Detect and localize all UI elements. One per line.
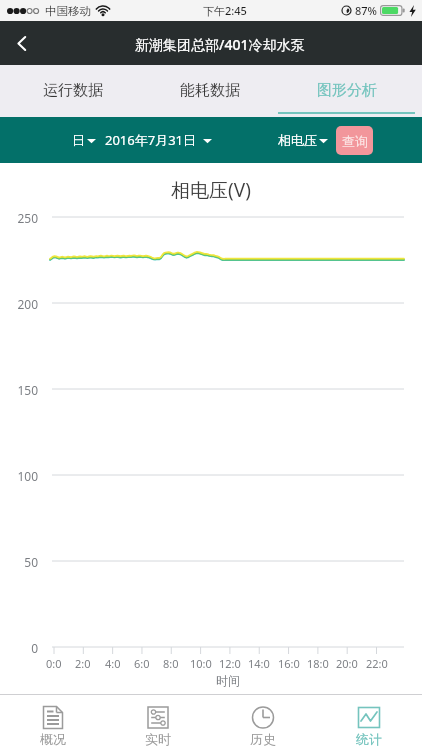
staticText: 14:0 [248, 656, 270, 671]
staticText: 50 [2, 554, 38, 570]
staticText: 22:0 [366, 656, 388, 671]
staticText: 0 [2, 640, 38, 656]
staticText: 相电压(V) [171, 177, 251, 203]
button[interactable]: 统计 [316, 695, 422, 750]
staticText: 0:0 [46, 656, 62, 671]
staticText: 新潮集团总部/401冷却水泵 [135, 35, 305, 54]
staticText: 查询 [342, 133, 368, 149]
button[interactable]: 能耗数据 [141, 65, 278, 117]
staticText: 概况 [40, 731, 66, 747]
button[interactable]: 实时 [105, 695, 210, 750]
button[interactable]: 运行数据 [4, 65, 141, 117]
staticText: 18:0 [307, 656, 329, 671]
button[interactable]: 图形分析 [278, 65, 415, 117]
staticText: 运行数据 [43, 81, 103, 100]
staticText: 下午2:45 [203, 3, 247, 18]
staticText: 16:0 [278, 656, 300, 671]
staticText: 150 [2, 382, 38, 398]
staticText: 中国移动 [45, 4, 91, 18]
button[interactable]: 相电压 [278, 132, 328, 148]
staticText: 日 [72, 132, 85, 148]
staticText: 2016年7月31日 [105, 131, 197, 149]
staticText: 历史 [250, 731, 276, 747]
staticText: 8:0 [163, 656, 179, 671]
staticText: 实时 [145, 731, 171, 747]
staticText: 2:0 [75, 656, 91, 671]
staticText: 时间 [216, 673, 240, 688]
button[interactable]: 查询 [336, 126, 373, 155]
staticText: 4:0 [105, 656, 121, 671]
button[interactable]: 历史 [210, 695, 316, 750]
staticText: 相电压 [278, 132, 317, 148]
staticText: 12:0 [219, 656, 241, 671]
staticText: 100 [2, 468, 38, 484]
staticText: 统计 [356, 731, 382, 747]
button[interactable]: Back [0, 21, 44, 65]
button[interactable]: 日 [72, 132, 96, 148]
staticText: 250 [2, 210, 38, 226]
staticText: 图形分析 [317, 81, 377, 100]
staticText: 200 [2, 296, 38, 312]
staticText: 20:0 [336, 656, 358, 671]
staticText: 10:0 [190, 656, 212, 671]
staticText: 87% [355, 3, 377, 18]
button[interactable]: 2016年7月31日 [105, 131, 212, 149]
staticText: 能耗数据 [180, 81, 240, 100]
button[interactable]: 概况 [0, 695, 105, 750]
staticText: 6:0 [134, 656, 150, 671]
